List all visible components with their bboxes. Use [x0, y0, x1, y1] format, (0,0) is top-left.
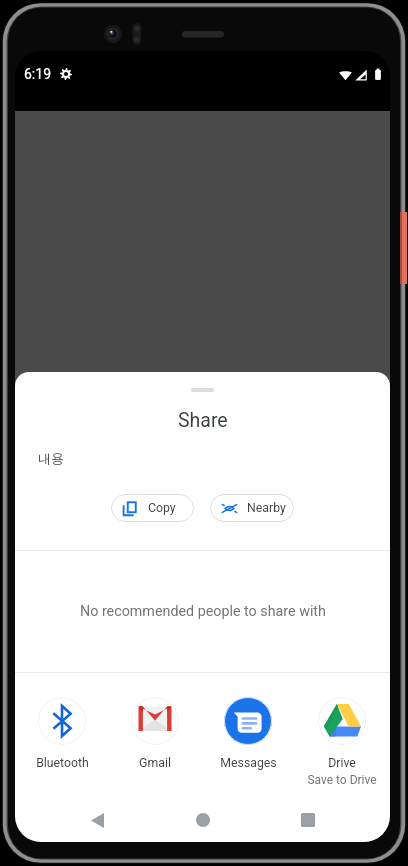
staticText: Bluetooth [36, 756, 89, 770]
staticText: 내용 [38, 450, 64, 466]
staticText: No recommended people to share with [80, 603, 326, 620]
staticText: Save to Drive [307, 773, 377, 787]
button[interactable]: Home [180, 797, 226, 842]
staticText: Nearby [247, 501, 286, 515]
staticText: 6:19 [24, 66, 51, 82]
staticText: Drive [328, 756, 356, 770]
staticText: Gmail [139, 756, 171, 770]
button[interactable]: Nearby [210, 494, 294, 522]
button[interactable]: Gmail [111, 697, 199, 770]
button[interactable]: Recents [285, 797, 331, 842]
button[interactable]: Back [74, 797, 120, 842]
button[interactable]: Bluetooth [18, 697, 106, 770]
button[interactable]: Drive [298, 697, 386, 787]
staticText: Share [178, 409, 228, 432]
button[interactable]: Messages [204, 697, 292, 770]
button[interactable]: Copy [111, 494, 194, 522]
staticText: Copy [148, 501, 176, 515]
staticText: Messages [220, 756, 277, 770]
